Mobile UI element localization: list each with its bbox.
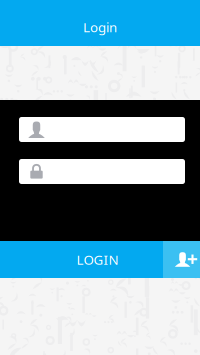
button[interactable]: LOGIN (0, 241, 200, 278)
staticText: Login (83, 18, 117, 36)
button[interactable]: Register (163, 241, 200, 278)
staticText: LOGIN (76, 251, 118, 268)
button[interactable]: Password (19, 159, 185, 184)
button[interactable]: Username (19, 117, 185, 142)
